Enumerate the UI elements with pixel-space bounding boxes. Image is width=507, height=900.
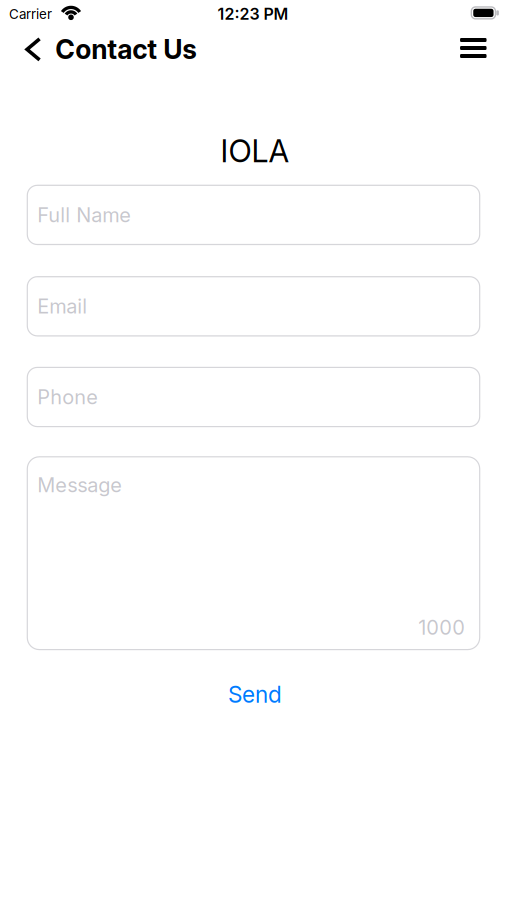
staticText: Email [37,294,87,318]
staticText: 12:23 PM [217,5,288,23]
staticText: Full Name [37,203,131,227]
button[interactable]: Send [220,677,290,712]
button[interactable]: Menu [454,32,493,64]
staticText: Send [228,681,282,708]
staticText: IOLA [221,133,290,169]
button[interactable]: Back [19,32,47,67]
staticText: Carrier [9,6,52,22]
staticText: Message [37,473,122,497]
staticText: Contact Us [55,34,197,65]
staticText: Phone [37,385,98,409]
staticText: 1000 [418,616,465,639]
